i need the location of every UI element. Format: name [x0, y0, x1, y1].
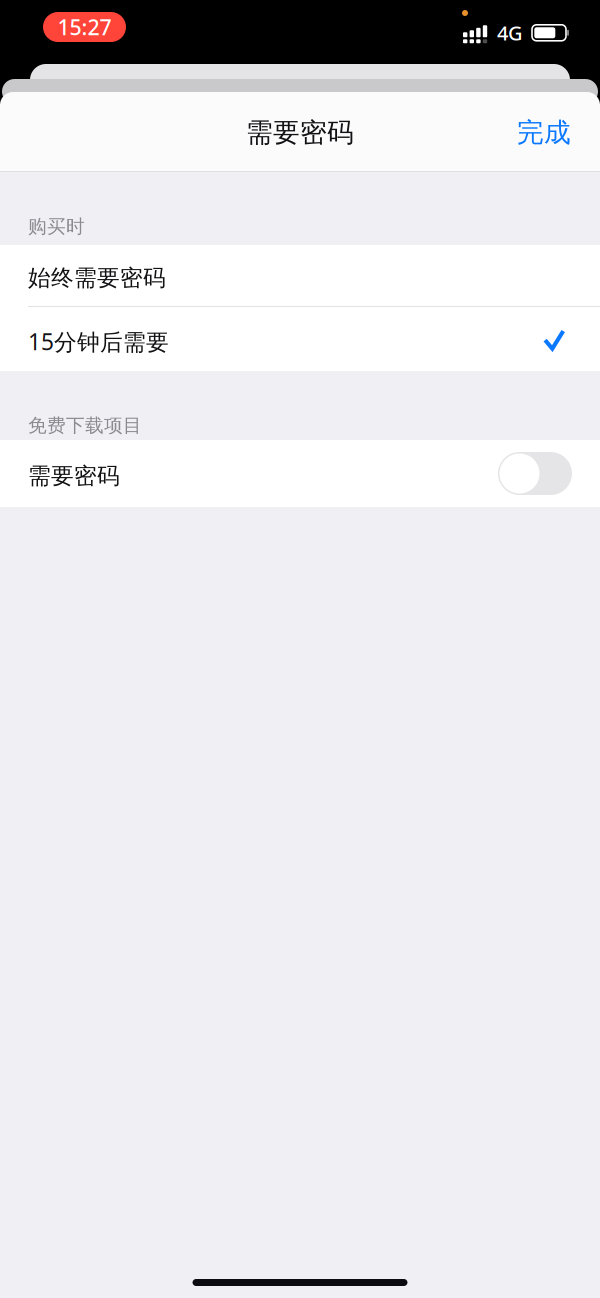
- staticText: 需要密码: [28, 462, 120, 490]
- staticText: 需要密码: [246, 116, 354, 149]
- staticText: 购买时: [28, 215, 85, 238]
- button[interactable]: 15分钟后需要: [0, 307, 600, 371]
- staticText: 15:27: [57, 13, 111, 41]
- staticText: 4G: [497, 19, 523, 46]
- button[interactable]: 完成: [505, 105, 583, 160]
- button[interactable]: 需要密码: [0, 440, 600, 507]
- staticText: 15分钟后需要: [28, 326, 169, 356]
- staticText: 免费下载项目: [28, 414, 142, 437]
- button[interactable]: 始终需要密码: [0, 245, 600, 307]
- staticText: 完成: [517, 116, 571, 149]
- staticText: 始终需要密码: [28, 264, 166, 292]
